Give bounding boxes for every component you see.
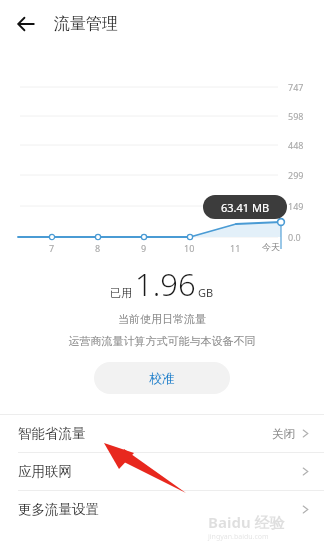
staticText: jingyan.baidu.com <box>208 532 269 542</box>
staticText: 598 <box>288 110 304 122</box>
staticText: 10 <box>184 242 195 254</box>
staticText: 今天 <box>262 241 280 252</box>
staticText: 7 <box>49 242 55 254</box>
staticText: 448 <box>288 139 304 151</box>
staticText: 流量管理 <box>54 14 118 34</box>
staticText: Baidu 经验 <box>208 512 285 532</box>
staticText: 11 <box>230 242 241 254</box>
staticText: 299 <box>288 169 304 181</box>
staticText: GB <box>198 285 214 300</box>
staticText: 运营商流量计算方式可能与本设备不同 <box>0 334 324 348</box>
button[interactable]: 智能省流量 <box>0 415 324 452</box>
staticText: 149 <box>288 200 304 212</box>
staticText: 应用联网 <box>18 463 72 480</box>
staticText: 1.96 <box>135 263 196 305</box>
staticText: 已用 <box>110 286 132 300</box>
staticText: 747 <box>288 81 304 93</box>
staticText: 智能省流量 <box>18 425 86 442</box>
staticText: 关闭 <box>272 427 295 441</box>
staticText: 当前使用日常流量 <box>0 312 324 326</box>
staticText: 9 <box>141 242 147 254</box>
staticText: 校准 <box>149 370 175 386</box>
staticText: 8 <box>95 242 101 254</box>
staticText: 更多流量设置 <box>18 501 99 518</box>
button[interactable]: 更多流量设置 <box>0 491 324 528</box>
staticText: 0.0 <box>288 231 301 243</box>
staticText: 63.41 MB <box>221 200 270 215</box>
button[interactable]: 校准 <box>94 362 230 394</box>
button[interactable]: 应用联网 <box>0 453 324 490</box>
button[interactable]: Back <box>11 9 41 39</box>
